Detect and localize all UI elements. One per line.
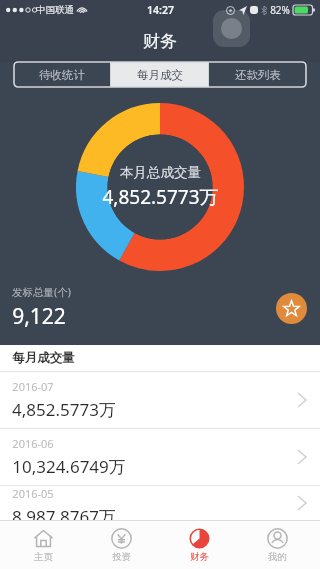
staticText: 9,122 xyxy=(12,302,66,331)
button[interactable]: 我的 xyxy=(242,521,312,569)
staticText: 本月总成交量 xyxy=(120,164,201,181)
button[interactable]: 收藏 xyxy=(276,293,307,324)
button[interactable]: 还款列表 xyxy=(209,62,306,87)
button[interactable]: 2016-07 xyxy=(0,372,320,428)
button[interactable]: 主页 xyxy=(8,521,78,569)
staticText: 10,324.6749万 xyxy=(12,455,126,478)
button[interactable]: 投资 xyxy=(86,521,156,569)
button[interactable]: 2016-06 xyxy=(0,429,320,485)
staticText: 2016-07 xyxy=(12,379,54,394)
staticText: 14:27 xyxy=(147,3,174,17)
staticText: 4,852.5773万 xyxy=(12,398,116,421)
staticText: 8,987.8767万 xyxy=(12,505,116,520)
staticText: 每月成交 xyxy=(137,68,183,82)
button[interactable]: 2016-05 xyxy=(0,486,320,520)
staticText: 中国联通 xyxy=(36,4,74,16)
staticText: 2016-05 xyxy=(12,486,54,501)
staticText: 我的 xyxy=(268,551,287,563)
button[interactable]: 每月成交 xyxy=(111,62,208,87)
staticText: 2016-06 xyxy=(12,436,54,451)
staticText: 主页 xyxy=(34,551,53,563)
staticText: 82% xyxy=(270,3,290,17)
staticText: 还款列表 xyxy=(235,68,281,82)
staticText: 待收统计 xyxy=(39,68,85,82)
staticText: 财务 xyxy=(190,551,209,563)
button[interactable]: 财务 xyxy=(164,521,234,569)
staticText: 每月成交量 xyxy=(12,350,75,366)
staticText: 发标总量(个) xyxy=(12,285,71,299)
staticText: 财务 xyxy=(143,31,177,52)
staticText: 投资 xyxy=(112,551,131,563)
button[interactable]: 待收统计 xyxy=(14,62,110,87)
staticText: 4,852.5773万 xyxy=(102,184,219,210)
